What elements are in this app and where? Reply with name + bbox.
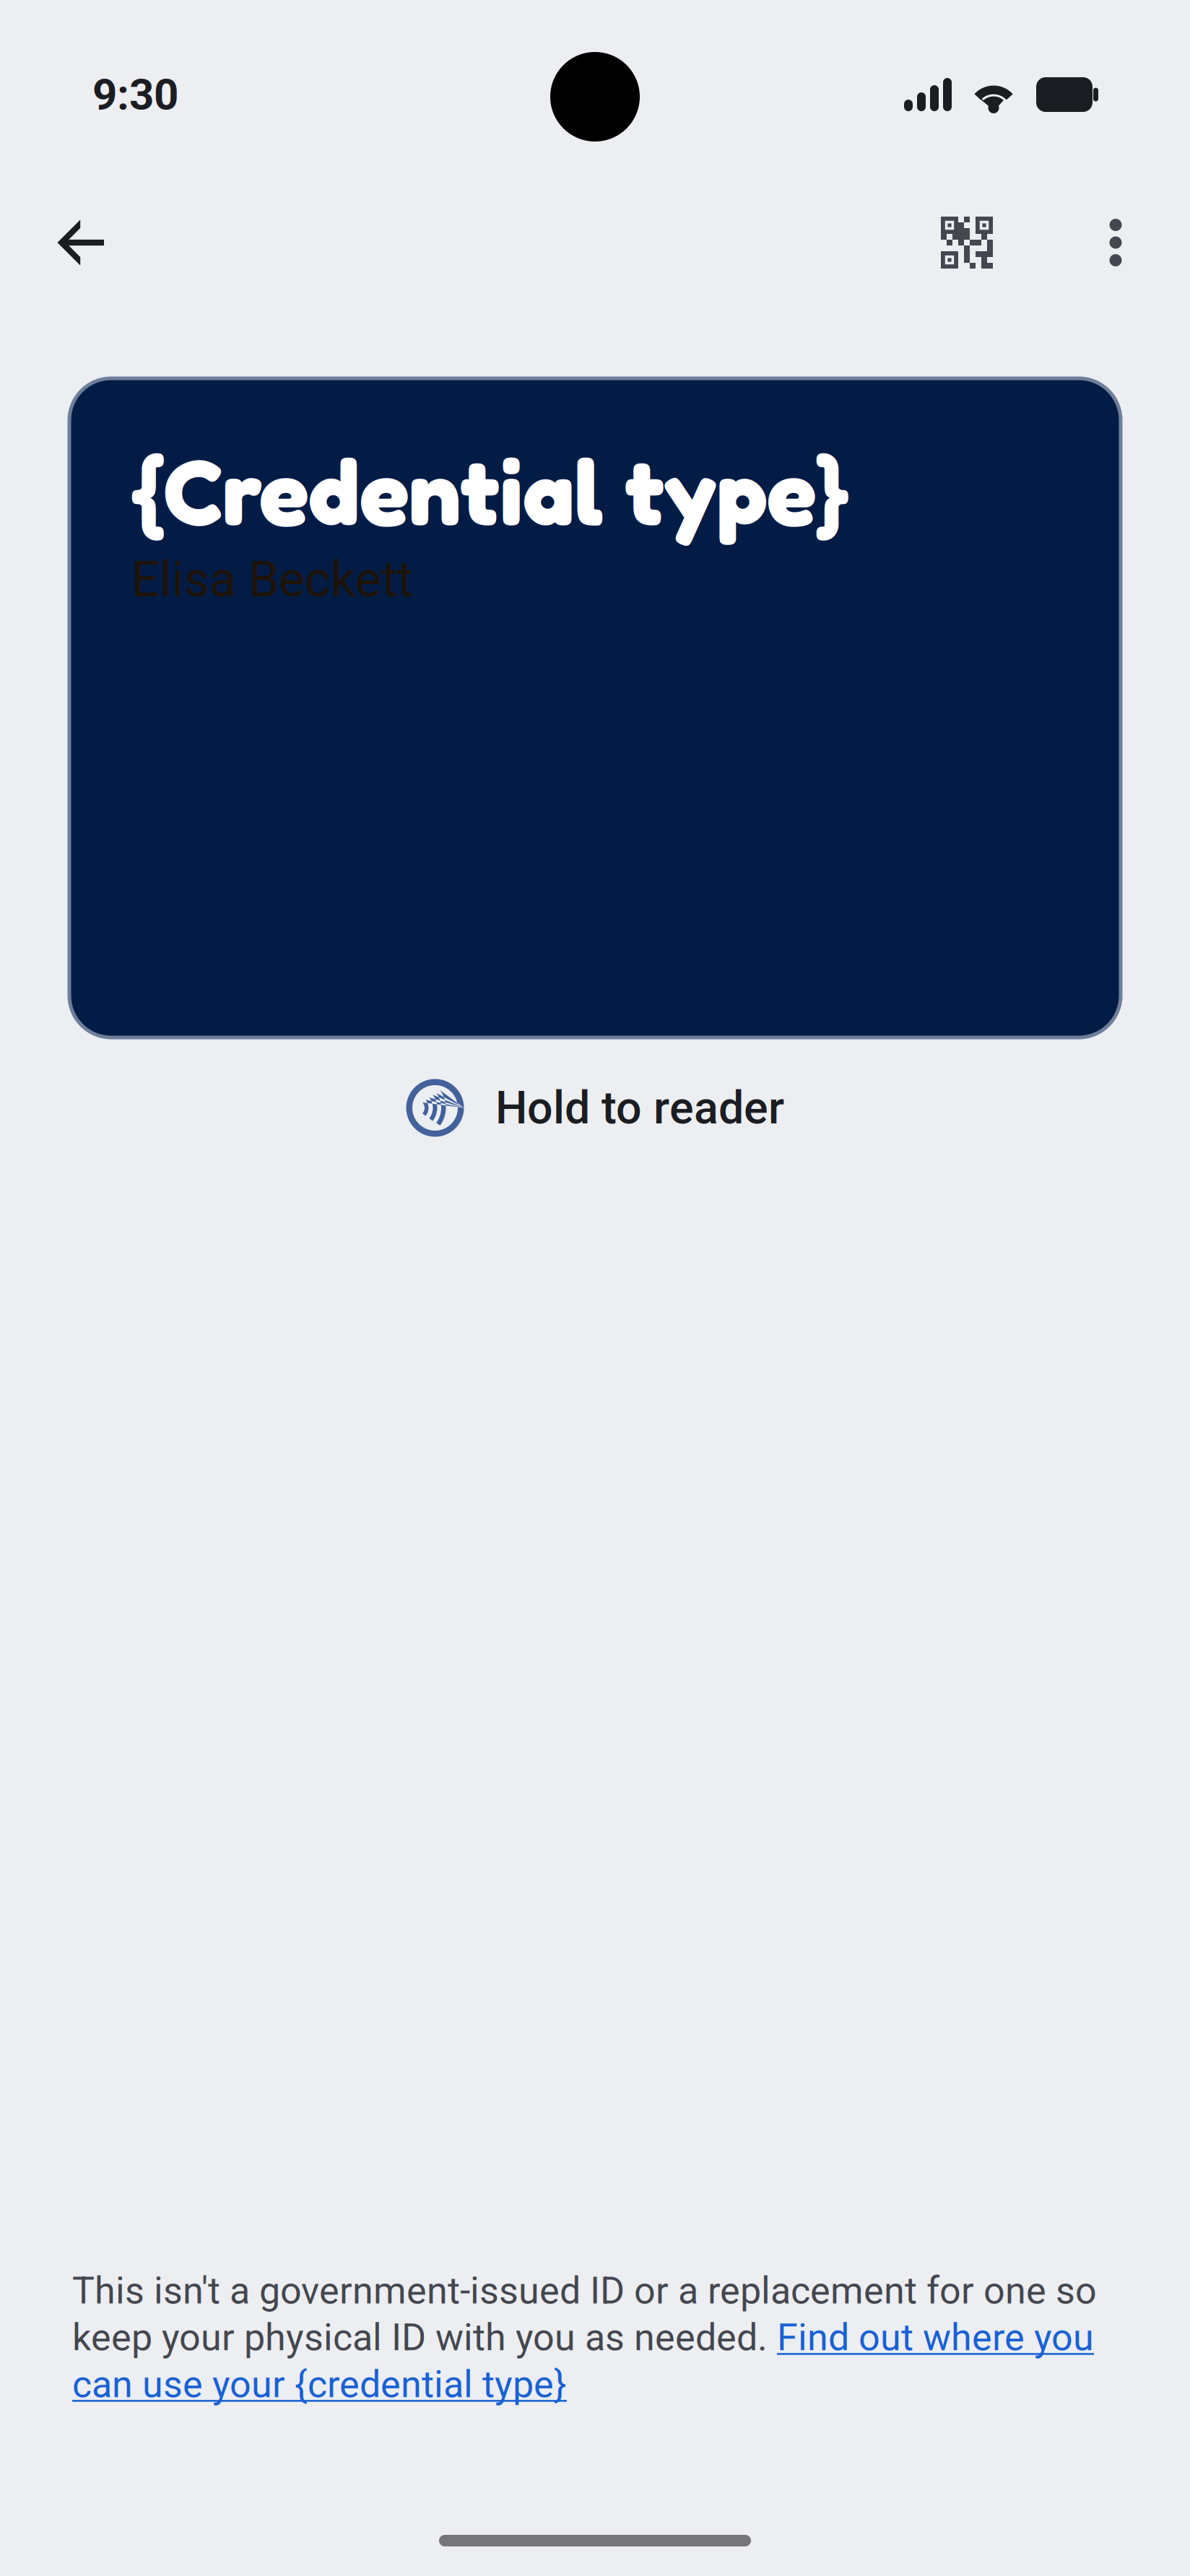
staticText: This isn't a government-issued ID or a r… (72, 2269, 1097, 2406)
button[interactable]: More options (1081, 208, 1150, 277)
button[interactable]: Show QR code (932, 208, 1002, 277)
staticText: Elisa Beckett (131, 551, 413, 608)
staticText: {Credential type} (131, 435, 848, 546)
staticText: 9:30 (92, 69, 178, 120)
staticText: Hold to reader (495, 1081, 784, 1134)
button[interactable]: Back (46, 208, 116, 277)
button[interactable]: This isn't a government-issued ID or a r… (72, 2269, 1118, 2406)
